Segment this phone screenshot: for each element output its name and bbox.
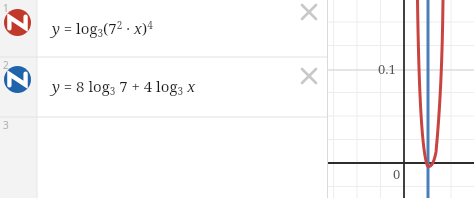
button[interactable]: y = 8 log3 7 + 4 log3 x: [38, 57, 296, 117]
staticText: y = log3(72 · x)4: [52, 18, 153, 40]
button[interactable]: Delete expression 2: [298, 65, 320, 87]
button[interactable]: [0, 117, 328, 198]
button[interactable]: Toggle graph 1: [4, 9, 31, 36]
staticText: 2: [3, 58, 9, 72]
staticText: 0: [393, 165, 401, 183]
button[interactable]: Delete expression 1: [298, 1, 320, 23]
staticText: 1: [3, 1, 9, 15]
button[interactable]: y = log3(72 · x)4: [38, 0, 296, 57]
button[interactable]: Toggle graph 2: [4, 66, 31, 93]
staticText: 0.1: [378, 60, 396, 78]
staticText: 3: [3, 118, 9, 132]
staticText: y = 8 log3 7 + 4 log3 x: [52, 76, 196, 98]
